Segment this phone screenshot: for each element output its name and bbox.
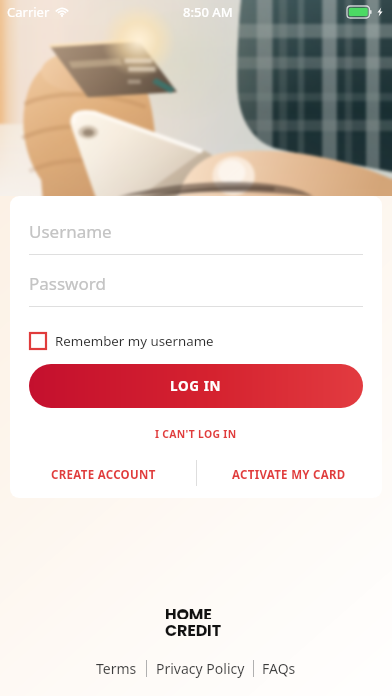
staticText: CREDIT [165,619,221,637]
staticText: Password [29,272,106,295]
button[interactable]: ACTIVATE MY CARD [196,457,382,493]
staticText: HOME [165,603,212,619]
staticText: CREATE ACCOUNT [51,467,156,483]
staticText: 8:50 AM [183,3,233,21]
button[interactable]: Terms [96,659,137,678]
staticText: Carrier [7,3,50,21]
button[interactable]: CREATE ACCOUNT [10,457,196,493]
staticText: Terms [96,659,137,678]
staticText: Username [29,220,112,243]
button[interactable]: LOG IN [29,364,363,408]
staticText: Privacy Policy [156,659,245,678]
button[interactable]: Privacy Policy [156,659,245,678]
button[interactable]: Remember my username [29,326,214,356]
staticText: FAQs [262,659,296,678]
staticText: Remember my username [55,332,214,350]
staticText: LOG IN [170,377,222,395]
button[interactable]: FAQs [262,659,296,678]
staticText: I CAN'T LOG IN [155,427,237,441]
staticText: ACTIVATE MY CARD [232,467,346,483]
button[interactable]: I CAN'T LOG IN [145,424,247,444]
